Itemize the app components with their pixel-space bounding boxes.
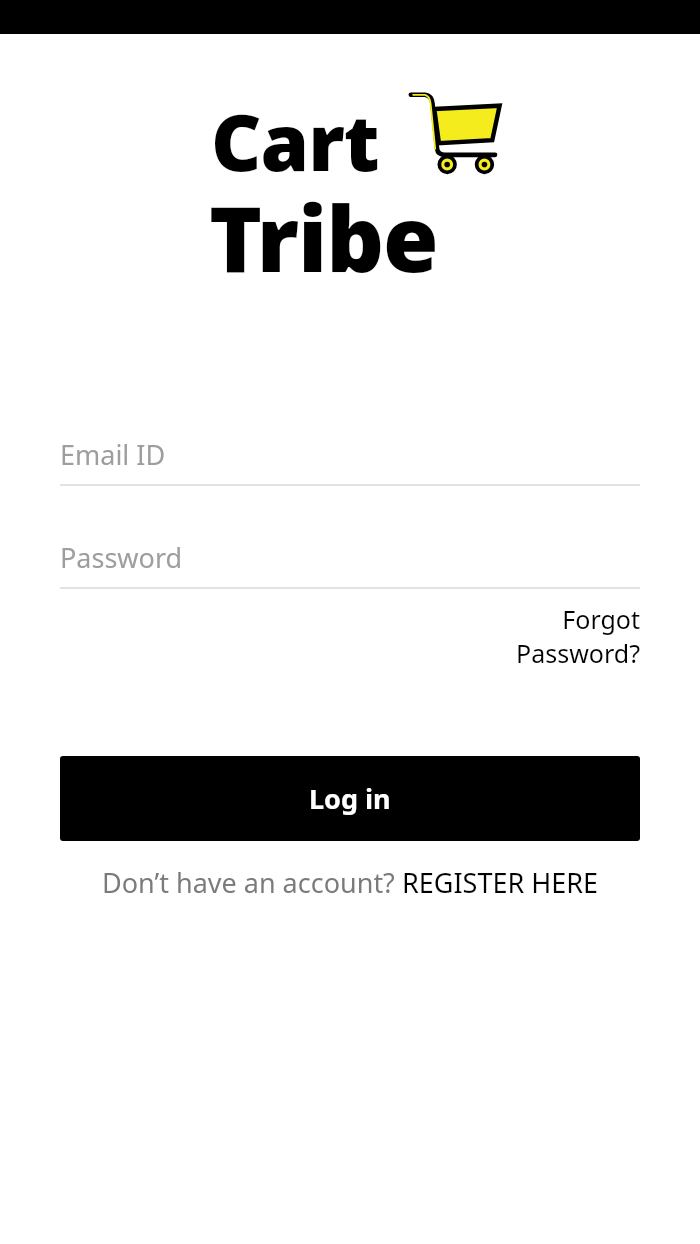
button[interactable]: REGISTER HERE — [402, 864, 599, 901]
staticText: Cart — [211, 88, 379, 188]
button[interactable]: Email ID — [60, 436, 640, 486]
other: Shopping cart logo — [409, 91, 501, 175]
staticText: Don’t have an account? — [102, 864, 402, 901]
button[interactable]: Password — [60, 539, 640, 589]
staticText: Email ID — [60, 436, 166, 473]
staticText: Log in — [309, 780, 391, 817]
button[interactable]: Forgot Password? — [440, 594, 640, 678]
staticText: Tribe — [209, 176, 438, 299]
staticText: Password — [60, 539, 183, 576]
button[interactable]: Log in — [60, 756, 640, 841]
staticText: Forgot Password? — [440, 602, 640, 670]
staticText: REGISTER HERE — [402, 864, 599, 901]
